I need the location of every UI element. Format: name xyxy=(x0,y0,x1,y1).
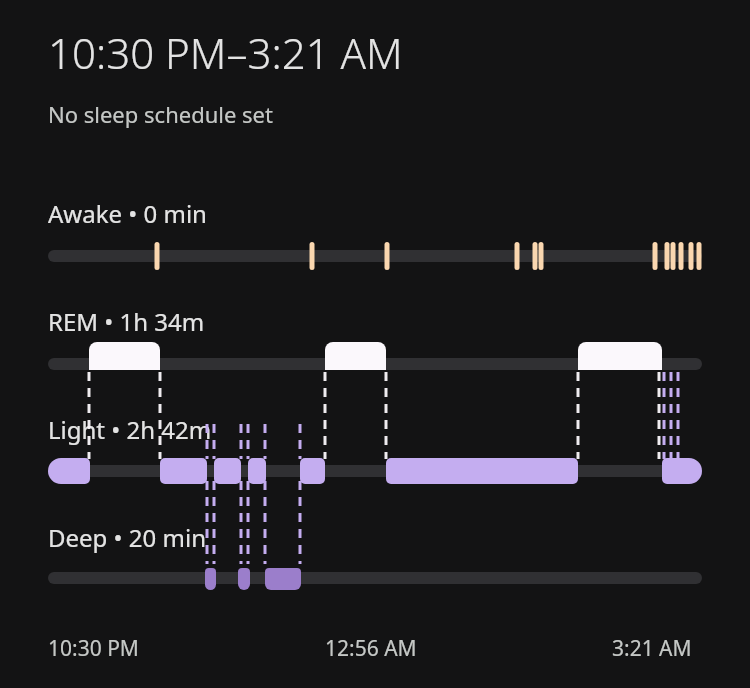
button[interactable]: Sleep stages chart xyxy=(0,0,750,688)
